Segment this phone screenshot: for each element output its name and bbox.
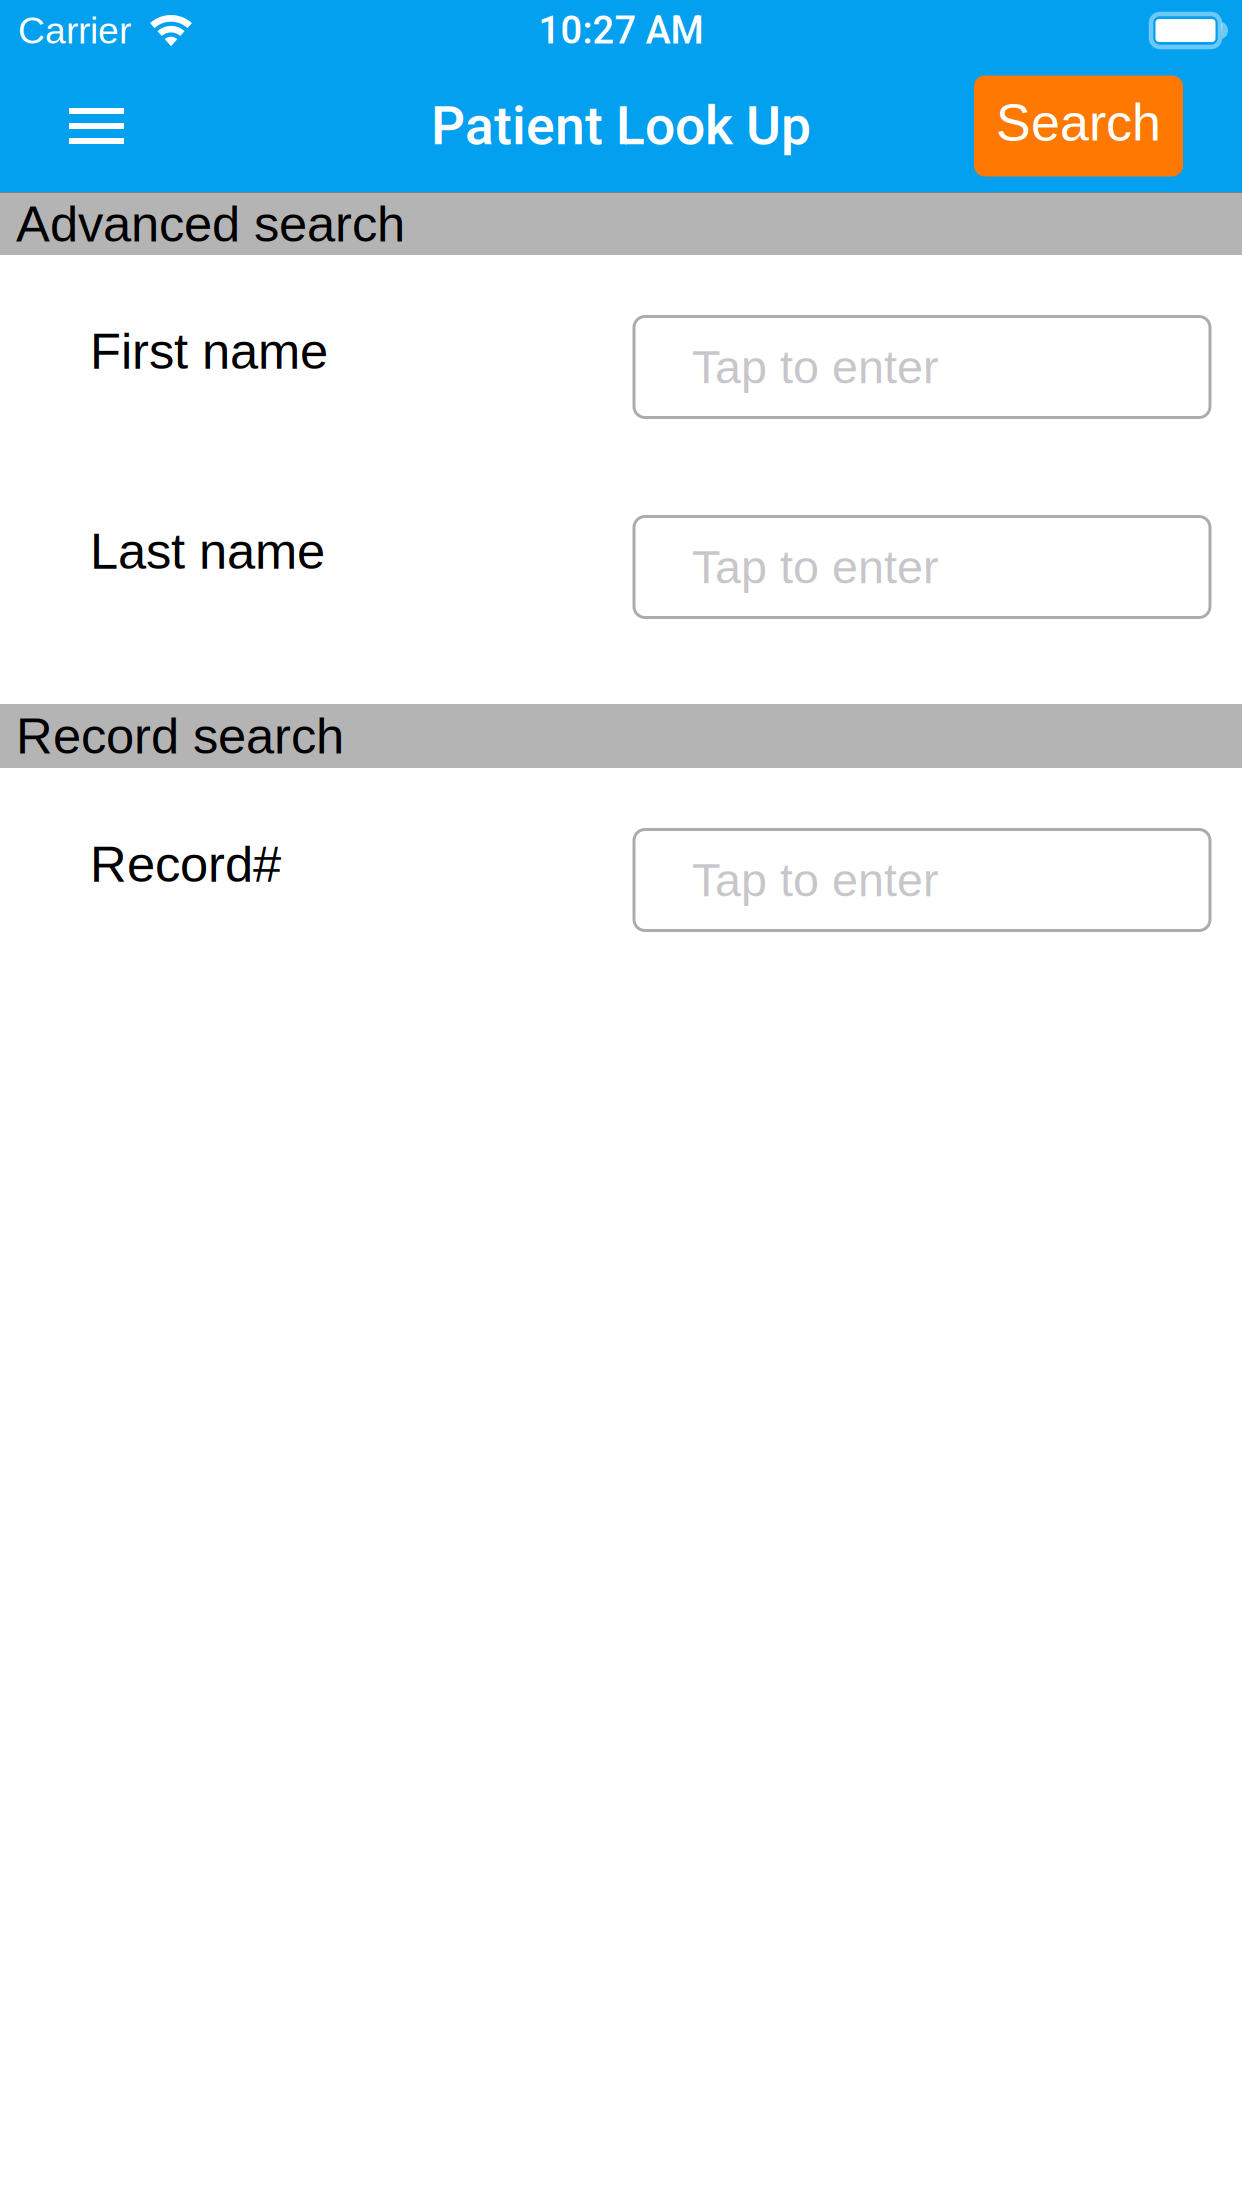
staticText: Search (996, 93, 1161, 152)
staticText: Tap to enter (692, 341, 939, 393)
button[interactable]: Tap to enter (634, 829, 1210, 930)
staticText: Advanced search (16, 196, 405, 252)
staticText: Patient Look Up (431, 95, 811, 157)
button[interactable]: Tap to enter (634, 316, 1210, 417)
staticText: Tap to enter (692, 854, 939, 906)
staticText: Carrier (18, 10, 131, 51)
staticText: Record search (16, 708, 344, 764)
staticText: Tap to enter (692, 541, 939, 593)
button[interactable]: Menu (0, 60, 174, 191)
staticText: 10:27 AM (538, 8, 703, 53)
staticText: Record# (90, 836, 281, 893)
button[interactable]: Tap to enter (634, 516, 1210, 617)
staticText: First name (90, 323, 328, 380)
button[interactable]: Search (974, 75, 1183, 176)
staticText: Last name (90, 523, 325, 580)
